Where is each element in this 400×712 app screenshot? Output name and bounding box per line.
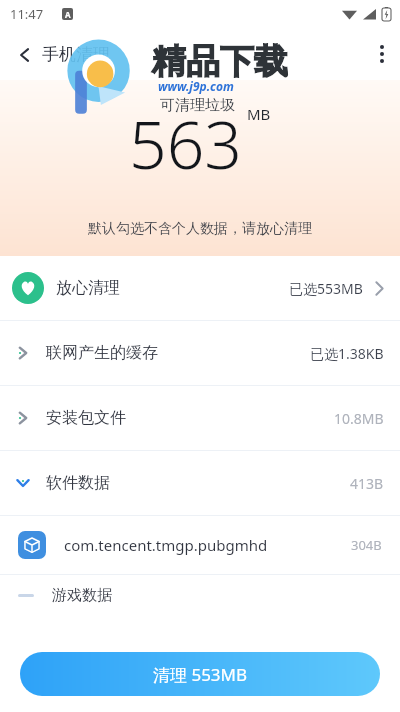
staticText: www.j9p.com [158,78,234,94]
staticText: 已选553MB [289,279,363,298]
staticText: 清理 553MB [153,663,248,686]
staticText: 413B [350,474,384,493]
other: Back [18,48,32,62]
button[interactable]: com.tencent.tmgp.pubgmhd [0,516,400,574]
staticText: com.tencent.tmgp.pubgmhd [64,535,268,555]
staticText: 软件数据 [46,473,110,493]
staticText: 精品下载 [152,40,288,83]
staticText: 安装包文件 [46,408,126,428]
staticText: 563 [129,98,243,188]
staticText: 手机清理 [42,44,110,65]
staticText: MB [247,104,271,124]
button[interactable]: Back [0,36,120,73]
staticText: 304B [351,536,382,554]
staticText: 11:47 [10,5,44,23]
staticText: 游戏数据 [52,586,112,605]
button[interactable]: 游戏数据 [0,575,400,615]
staticText: 放心清理 [56,278,120,298]
button[interactable]: More options [364,33,400,75]
button[interactable]: 清理 553MB [20,652,380,696]
staticText: 已选1.38KB [310,344,384,363]
staticText: A [65,9,71,20]
staticText: 可清理垃圾 [160,96,235,115]
button[interactable]: 安装包文件 [0,386,400,450]
button[interactable]: 放心清理 [0,256,400,320]
staticText: 默认勾选不含个人数据，请放心清理 [88,220,312,238]
button[interactable]: 软件数据 [0,451,400,515]
button[interactable]: 联网产生的缓存 [0,321,400,385]
staticText: 10.8MB [334,409,384,428]
staticText: 联网产生的缓存 [46,343,158,363]
